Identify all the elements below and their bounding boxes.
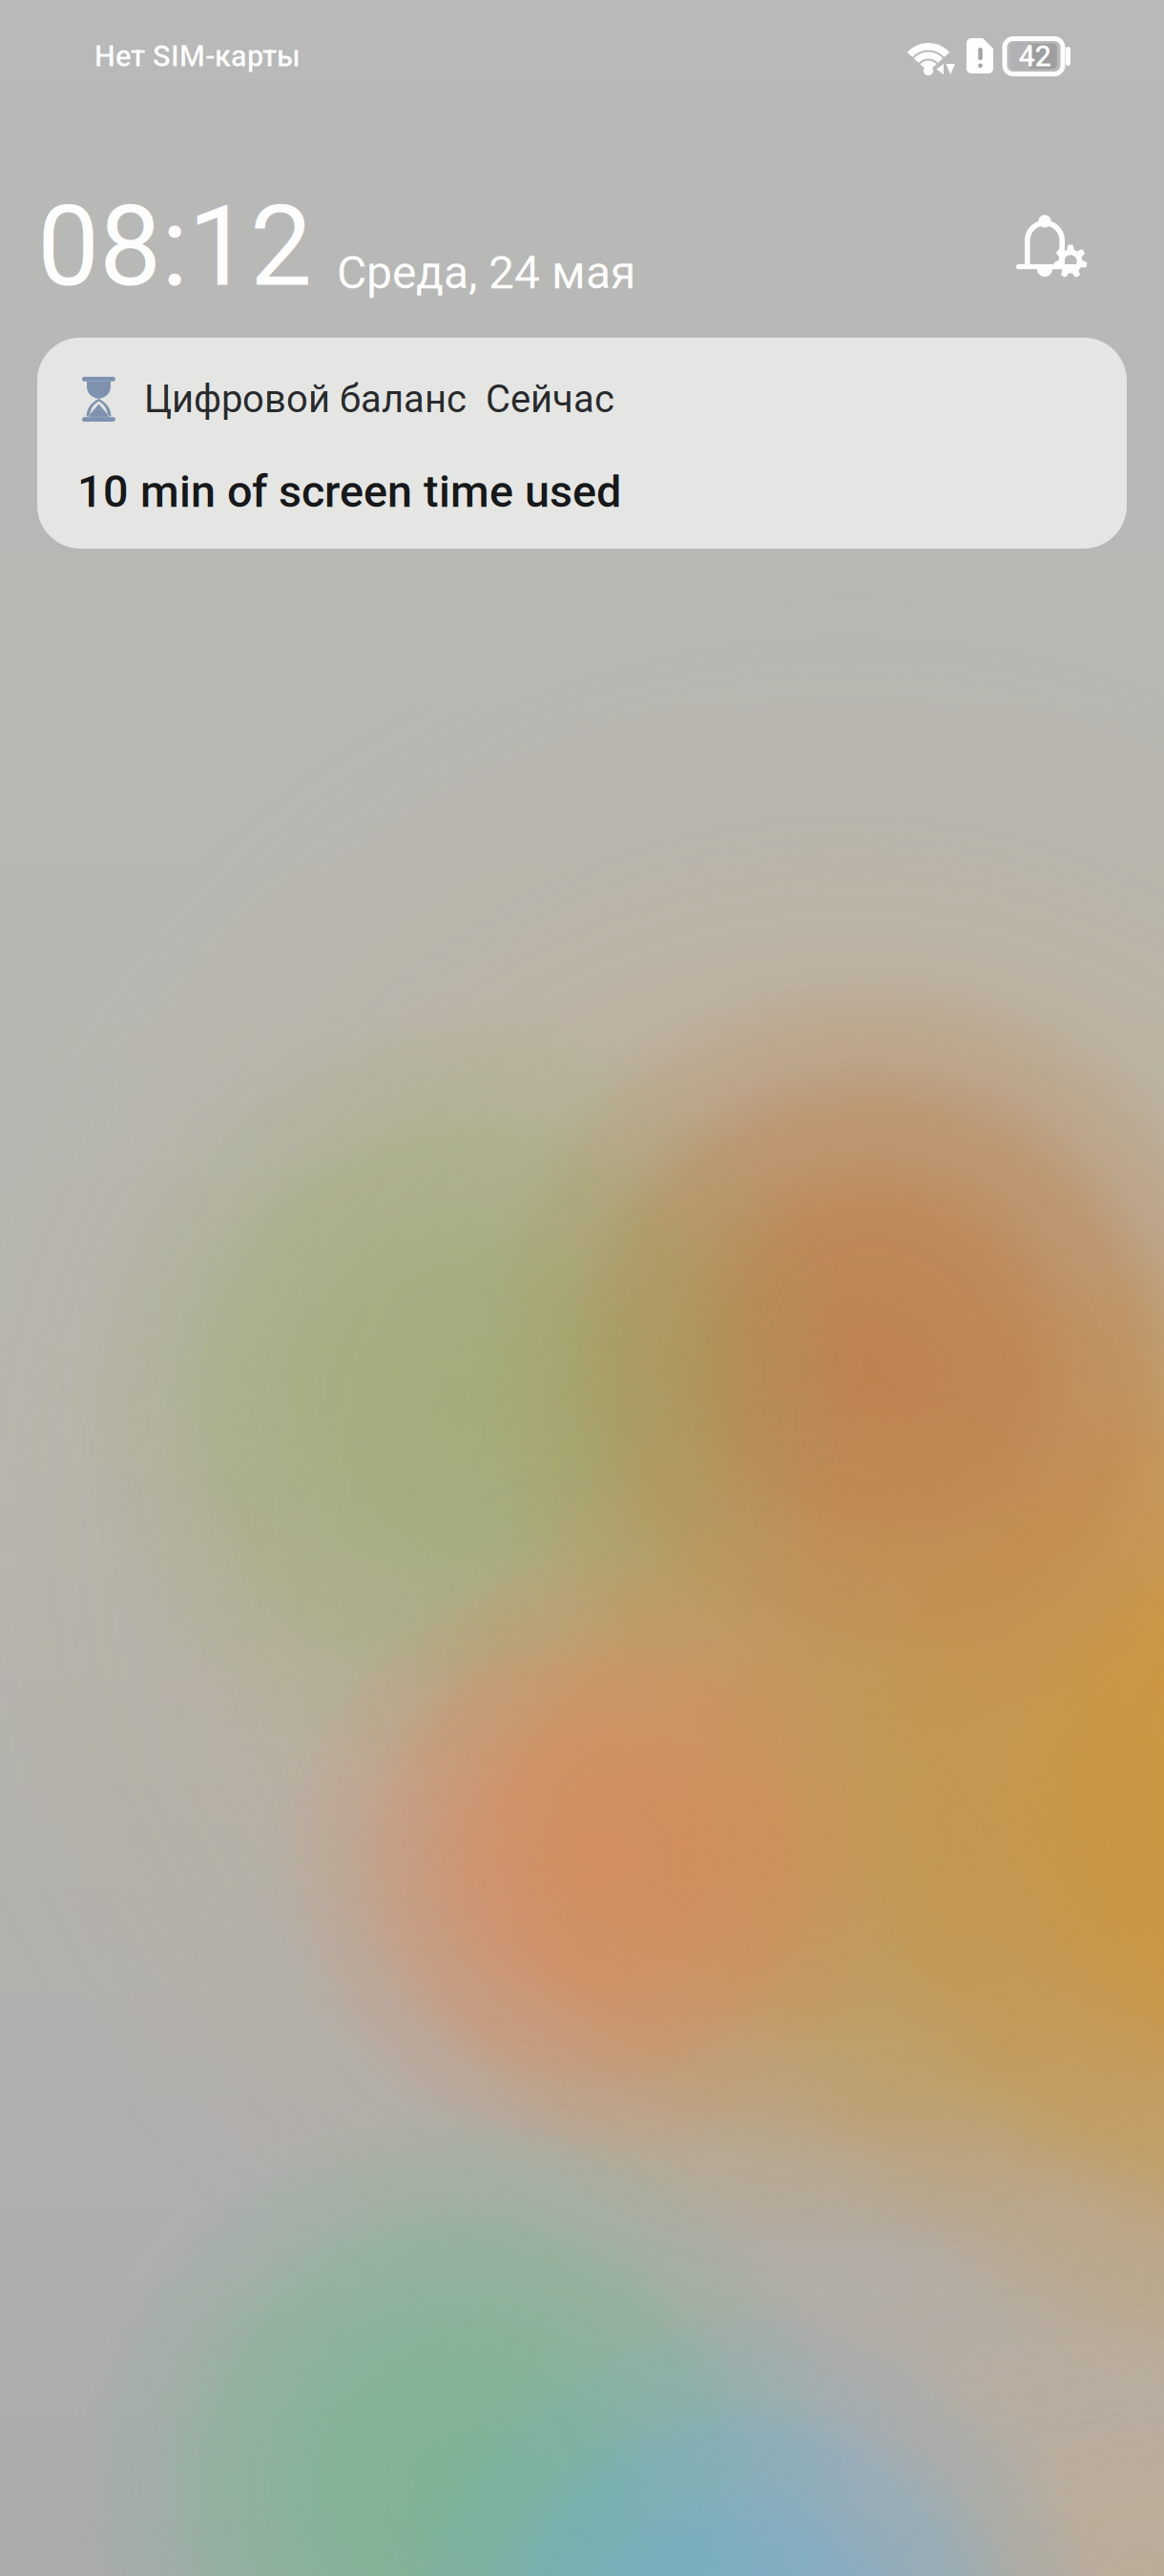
button[interactable]: Цифровой баланс Сейчас <box>37 338 1127 548</box>
staticText: Среда, 24 мая <box>337 246 635 299</box>
staticText: Нет SIM-карты <box>94 39 301 73</box>
staticText: Цифровой баланс Сейчас <box>144 377 614 422</box>
staticText: 10 min of screen time used <box>77 465 621 518</box>
staticText: 08:12 <box>37 182 312 312</box>
button[interactable]: Notification settings <box>1020 215 1089 312</box>
staticText: 42 <box>1018 39 1051 73</box>
